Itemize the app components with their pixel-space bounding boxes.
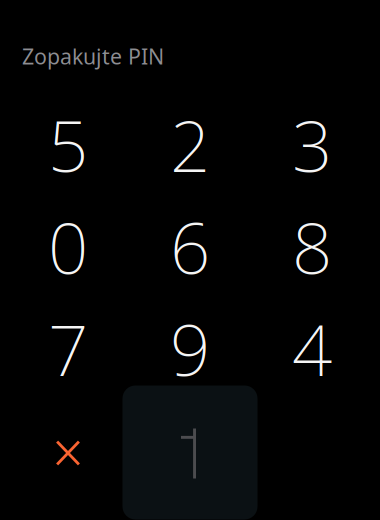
staticText: 8 xyxy=(292,200,332,293)
button[interactable] xyxy=(129,399,251,501)
button[interactable]: Delete xyxy=(7,399,129,501)
staticText: 2 xyxy=(170,98,210,191)
button[interactable]: 7 xyxy=(7,297,129,399)
button[interactable]: 8 xyxy=(251,195,373,297)
button[interactable]: 6 xyxy=(129,195,251,297)
staticText: 7 xyxy=(48,302,88,395)
staticText: 4 xyxy=(292,302,332,395)
staticText: 0 xyxy=(48,200,88,293)
button[interactable]: 2 xyxy=(129,93,251,195)
staticText: 3 xyxy=(292,98,332,191)
staticText: Zopakujte PIN xyxy=(22,42,164,70)
button[interactable]: 5 xyxy=(7,93,129,195)
staticText: 6 xyxy=(170,200,210,293)
staticText: 9 xyxy=(170,302,210,395)
button[interactable]: 4 xyxy=(251,297,373,399)
button[interactable]: 3 xyxy=(251,93,373,195)
button[interactable]: 9 xyxy=(129,297,251,399)
staticText: 5 xyxy=(48,98,88,191)
button[interactable]: 0 xyxy=(7,195,129,297)
